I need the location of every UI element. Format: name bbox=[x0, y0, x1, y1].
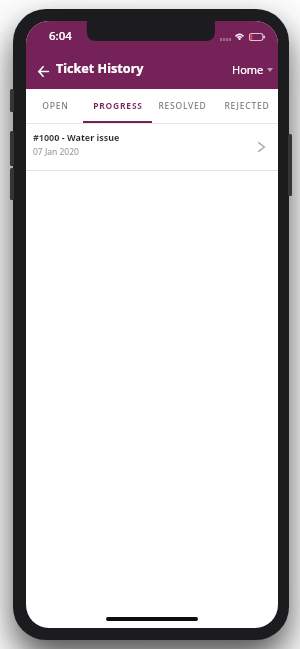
staticText: 07 Jan 2020 bbox=[33, 146, 79, 158]
button[interactable]: #1000 - Water issue bbox=[26, 124, 278, 170]
staticText: PROGRESS bbox=[93, 100, 143, 112]
button[interactable]: REJECTED bbox=[215, 89, 278, 124]
staticText: OPEN bbox=[42, 100, 69, 112]
button[interactable]: Back bbox=[36, 64, 50, 78]
staticText: REJECTED bbox=[224, 100, 270, 112]
button[interactable]: OPEN bbox=[26, 89, 87, 124]
staticText: Home bbox=[232, 62, 264, 77]
staticText: RESOLVED bbox=[158, 100, 207, 112]
staticText: 6:04 bbox=[49, 28, 72, 44]
staticText: #1000 - Water issue bbox=[33, 131, 120, 143]
staticText: Ticket History bbox=[56, 60, 144, 77]
button[interactable]: RESOLVED bbox=[150, 89, 214, 124]
button[interactable]: PROGRESS bbox=[86, 89, 150, 124]
button[interactable]: Home bbox=[228, 57, 277, 82]
